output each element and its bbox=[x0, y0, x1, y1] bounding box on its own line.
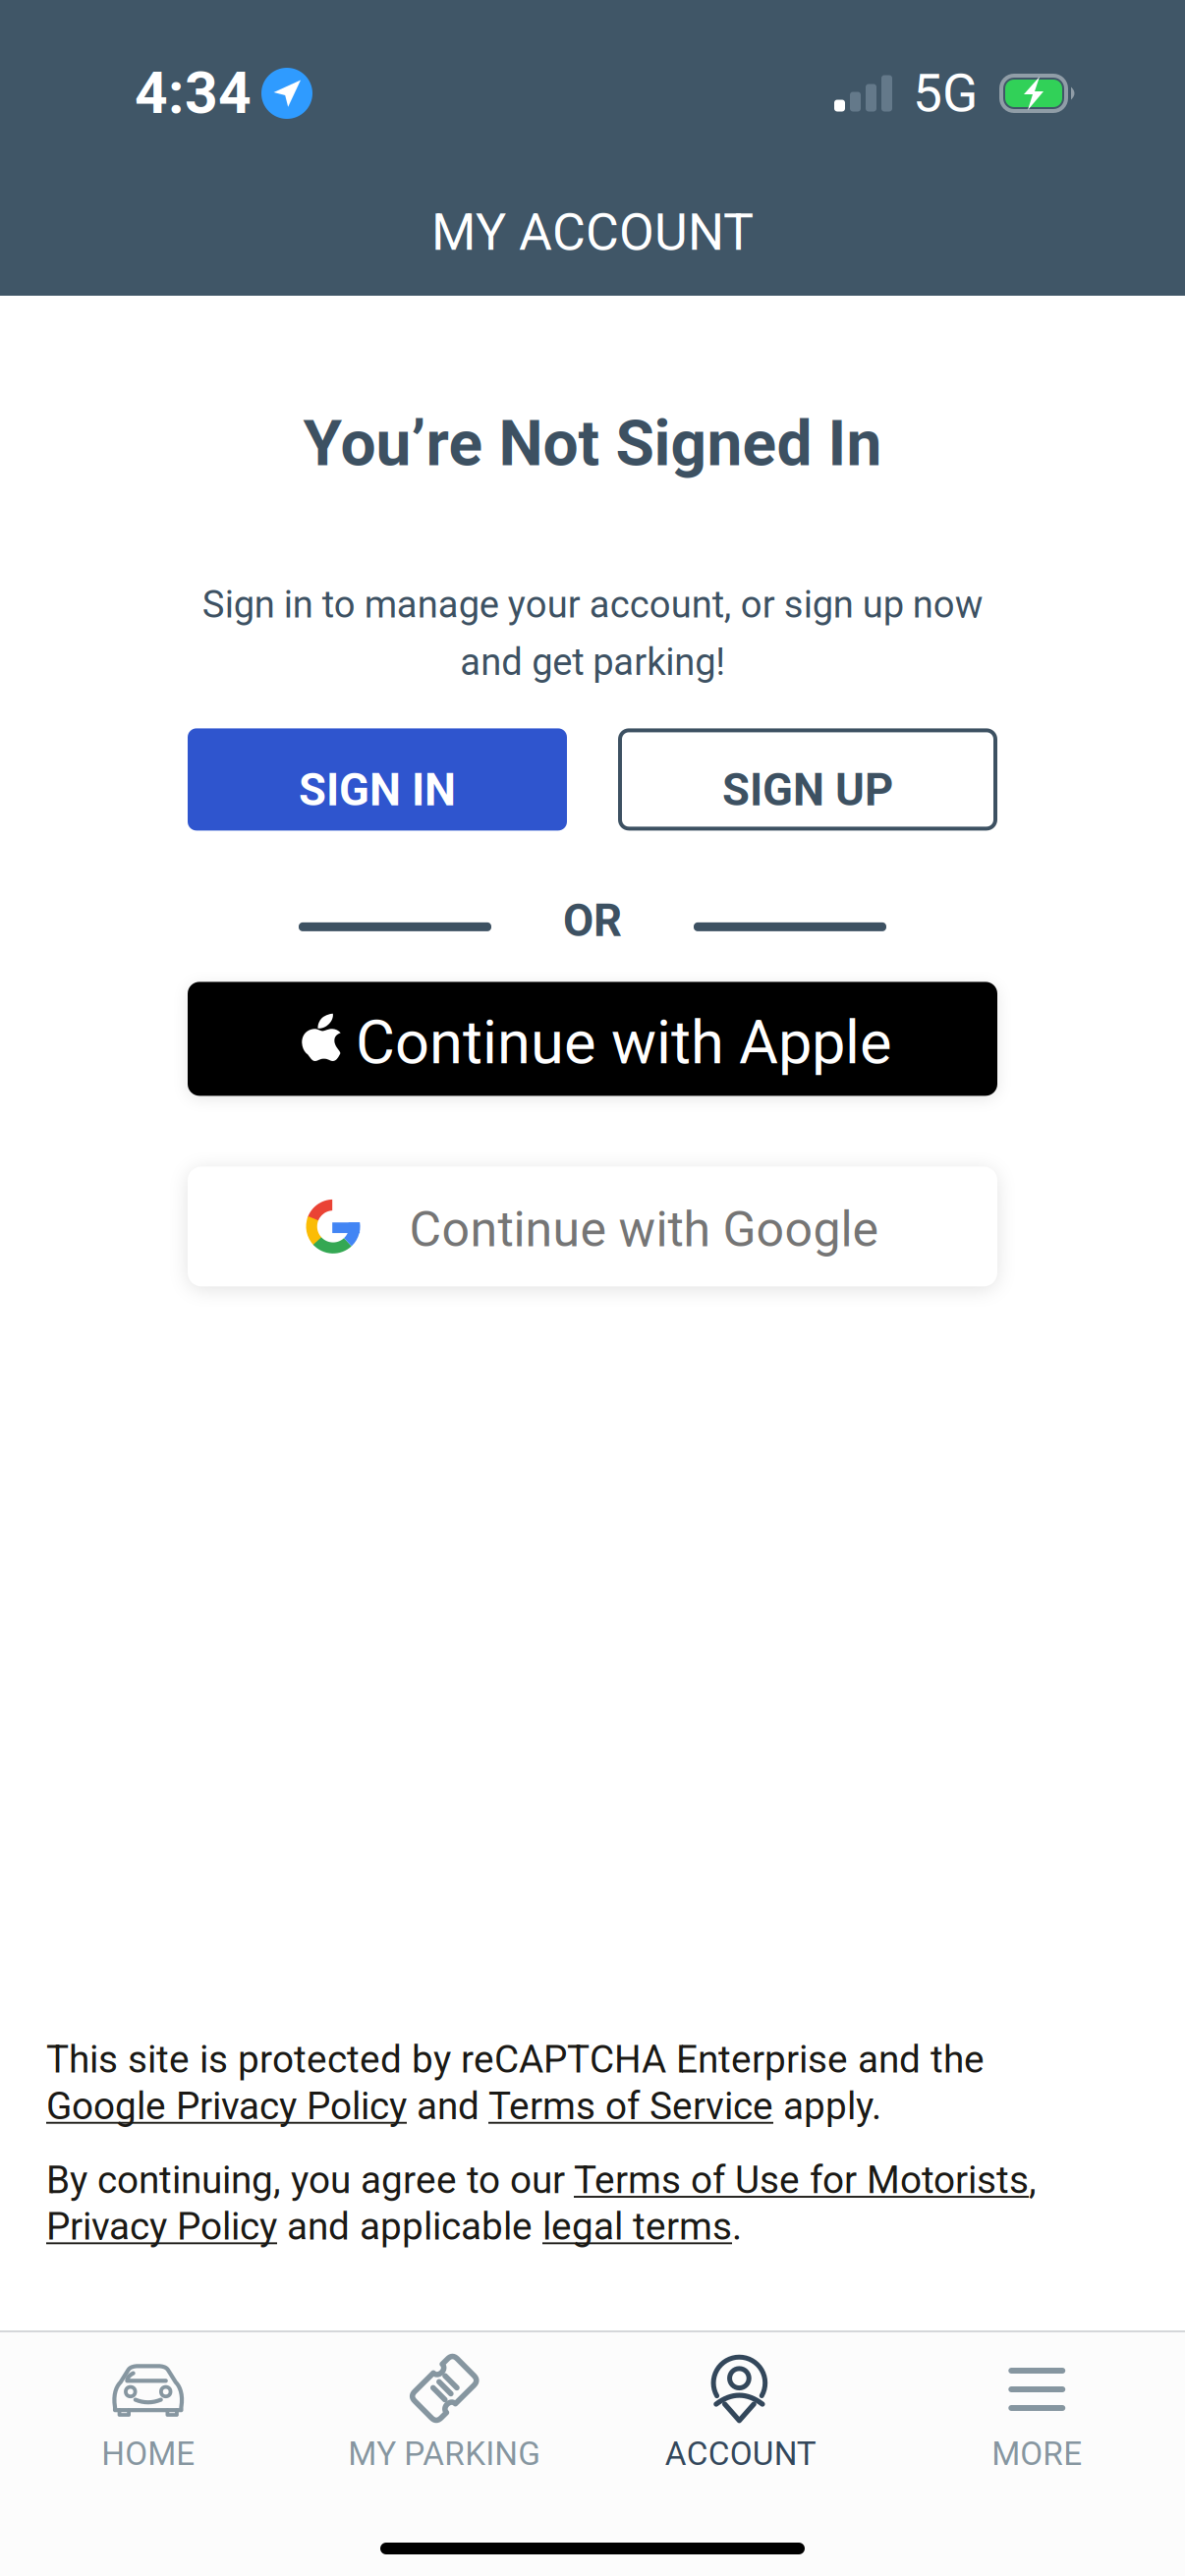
staticText: MORE bbox=[992, 2435, 1082, 2473]
staticText: 5G bbox=[913, 63, 978, 124]
staticText: Continue with Google bbox=[409, 1201, 879, 1258]
button[interactable]: MY PARKING bbox=[296, 2332, 592, 2483]
staticText: 4:34 bbox=[135, 60, 252, 127]
button[interactable]: HOME bbox=[0, 2332, 296, 2483]
staticText: By continuing, you agree to our Terms of… bbox=[46, 2158, 1037, 2249]
staticText: SIGN IN bbox=[299, 764, 456, 816]
staticText: You’re Not Signed In bbox=[303, 407, 882, 480]
button[interactable]: SIGN UP bbox=[618, 728, 997, 831]
staticText: Continue with Apple bbox=[356, 1007, 892, 1078]
button[interactable]: SIGN IN bbox=[188, 728, 567, 831]
button[interactable]: ACCOUNT bbox=[592, 2332, 889, 2483]
button[interactable]: MORE bbox=[889, 2332, 1185, 2483]
staticText: SIGN UP bbox=[722, 764, 893, 816]
staticText: MY PARKING bbox=[348, 2435, 541, 2473]
staticText: HOME bbox=[101, 2435, 195, 2473]
staticText: MY ACCOUNT bbox=[431, 202, 754, 262]
button[interactable]: Continue with Apple bbox=[188, 982, 997, 1096]
staticText: OR bbox=[563, 895, 622, 947]
staticText: Sign in to manage your account, or sign … bbox=[202, 583, 983, 684]
staticText: This site is protected by reCAPTCHA Ente… bbox=[46, 2037, 985, 2128]
staticText: ACCOUNT bbox=[665, 2435, 816, 2473]
button[interactable]: Continue with Google bbox=[188, 1167, 997, 1286]
